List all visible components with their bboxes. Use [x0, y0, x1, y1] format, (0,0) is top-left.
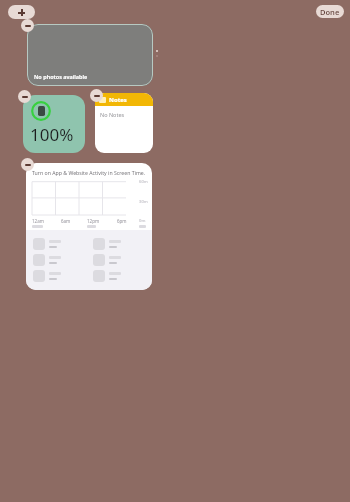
staticText: No Notes: [100, 111, 125, 118]
staticText: 12pm: [87, 218, 100, 224]
staticText: 100%: [30, 123, 74, 146]
staticText: Notes: [109, 96, 127, 104]
button[interactable]: Remove notes widget: [90, 89, 103, 102]
button[interactable]: Notes: [95, 93, 153, 153]
button[interactable]: Remove screen time widget: [21, 158, 34, 171]
staticText: 0m: [139, 218, 146, 224]
button[interactable]: Remove battery widget: [18, 90, 31, 103]
button[interactable]: 100%: [23, 95, 85, 153]
button[interactable]: Turn on App & Website Activity in Screen…: [26, 163, 152, 290]
staticText: 12am: [32, 218, 44, 224]
button[interactable]: No photos available: [27, 24, 153, 86]
staticText: 6pm: [117, 218, 127, 224]
staticText: 30m: [139, 199, 148, 205]
staticText: 6am: [61, 218, 71, 224]
staticText: 60m: [139, 179, 148, 185]
button[interactable]: Remove photos widget: [21, 19, 34, 32]
button[interactable]: Add widget: [8, 5, 35, 19]
staticText: Done: [320, 7, 340, 17]
staticText: Turn on App & Website Activity in Screen…: [32, 169, 146, 176]
staticText: No photos available: [34, 73, 88, 80]
button[interactable]: Done: [316, 5, 344, 18]
